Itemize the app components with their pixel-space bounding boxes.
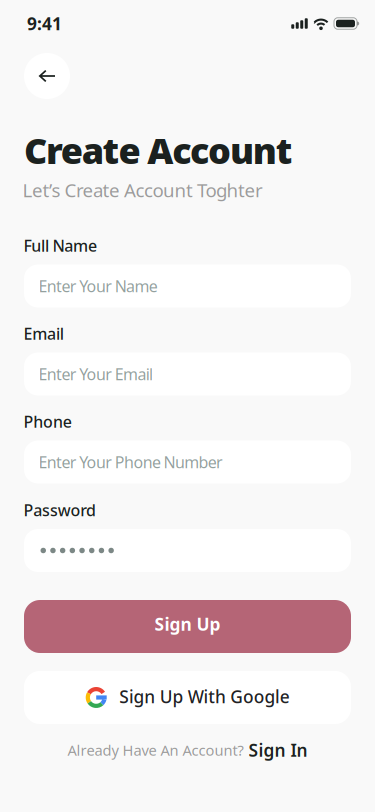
staticText: Sign Up With Google [119,685,290,708]
staticText: Email [23,323,64,344]
staticText: Enter Your Email [38,363,153,385]
textField[interactable]: Enter Your Phone Number [38,451,351,473]
staticText: Already Have An Account? [67,740,243,760]
button[interactable]: Sign Up [24,600,351,653]
button[interactable]: Back [24,53,70,99]
staticText: Enter Your Phone Number [38,451,223,473]
textField[interactable]: Enter Your Name [38,275,351,297]
staticText: Sign Up [154,612,220,635]
secureTextField[interactable]: 12345678 [40,539,351,562]
button[interactable]: Sign Up With Google [24,671,351,724]
staticText: Password [23,499,96,521]
staticText: Sign In [248,738,307,761]
staticText: 9:41 [27,12,62,35]
staticText: •••••••• [40,539,96,562]
textField[interactable]: Enter Your Email [38,363,351,385]
staticText: Enter Your Email [38,363,151,385]
staticText: Enter Your Name [38,275,156,297]
button[interactable]: Already Have An Account? [67,741,307,759]
staticText: Let’s Create Account Toghter [22,178,263,202]
staticText: Create Account [24,126,293,174]
staticText: Full Name [23,235,97,256]
staticText: Phone [23,411,72,432]
staticText: Enter Your Name [38,275,158,297]
staticText: Enter Your Phone Number [38,451,221,473]
